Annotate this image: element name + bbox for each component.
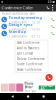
staticText: Recent conference calls (2, 12, 35, 15)
button[interactable]: Edit Contact (15, 51, 48, 56)
staticText: Photo Editor (25, 82, 34, 89)
staticText: Invite Conference (17, 62, 43, 66)
staticText: Start Conference (17, 41, 40, 44)
staticText: 5 participants · 10:05 (9, 28, 41, 31)
staticText: 4G (48, 0, 52, 4)
button[interactable]: Recents (40, 93, 47, 100)
button[interactable]: New call (45, 74, 53, 81)
button[interactable]: Design sync (0, 23, 56, 30)
button[interactable]: Home (25, 93, 31, 100)
staticText: Tuesday meeting (9, 15, 43, 20)
staticText: DOWNLOAD (40, 84, 53, 91)
staticText: Design sync (9, 22, 33, 27)
staticText: Edit Contact (17, 52, 33, 55)
staticText: Conference Caller (1, 5, 33, 10)
staticText: Share Conference (17, 68, 42, 71)
button[interactable]: Standup (0, 30, 56, 37)
button[interactable]: Tuesday meeting (0, 16, 56, 23)
button[interactable]: Back (9, 93, 16, 100)
staticText: Add to Favorites (17, 46, 39, 50)
button[interactable]: Add to Favorites (15, 45, 48, 51)
button[interactable]: Invite Conference (15, 62, 48, 67)
button[interactable]: Start Conference (15, 40, 48, 45)
button[interactable]: Call (45, 6, 51, 9)
staticText: 4 participants · 09:15 (9, 35, 41, 38)
button[interactable]: More options (51, 5, 55, 11)
button[interactable]: Delete Conference (15, 56, 48, 62)
staticText: Free app (25, 89, 37, 93)
button[interactable]: DOWNLOAD (39, 85, 55, 90)
staticText: Standup (9, 29, 27, 34)
staticText: 3 participants · 12:30 (9, 21, 41, 24)
staticText: Delete Conference (17, 57, 45, 61)
button[interactable]: Share Conference (15, 67, 48, 72)
